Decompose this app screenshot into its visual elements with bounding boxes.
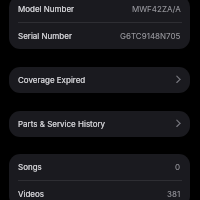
staticText: MWF42ZA/A [132, 4, 181, 14]
button[interactable]: Songs [9, 154, 190, 180]
staticText: G6TC9148N705 [120, 31, 181, 41]
button[interactable]: Coverage Expired [9, 67, 190, 93]
button[interactable]: Videos [9, 181, 190, 200]
other: Open [171, 114, 181, 134]
staticText: Videos [18, 189, 45, 199]
button[interactable]: Model Number [9, 0, 190, 22]
staticText: Parts & Service History [18, 119, 106, 129]
button[interactable]: Serial Number [9, 23, 190, 49]
staticText: 0 [175, 162, 181, 172]
button[interactable]: Parts & Service History [9, 111, 190, 137]
staticText: Model Number [18, 4, 75, 14]
staticText: Serial Number [18, 31, 72, 41]
staticText: Coverage Expired [18, 75, 86, 85]
staticText: Songs [18, 162, 42, 172]
other: Open [171, 70, 181, 90]
staticText: 381 [167, 189, 181, 199]
